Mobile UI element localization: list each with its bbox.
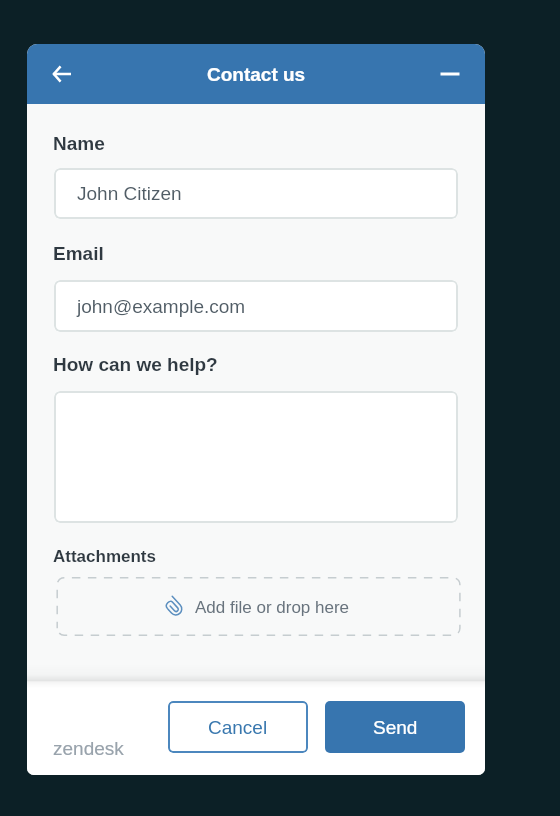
staticText: Send	[373, 717, 418, 738]
staticText: zendesk	[53, 738, 124, 759]
button[interactable]: Add file or drop here	[54, 577, 458, 636]
button[interactable]: Send	[325, 701, 465, 753]
button[interactable]	[54, 391, 458, 523]
staticText: Attachments	[53, 547, 156, 566]
staticText: john@example.com	[77, 296, 246, 317]
staticText: Email	[53, 243, 104, 264]
staticText: Cancel	[208, 717, 268, 738]
staticText: How can we help?	[53, 354, 218, 375]
button[interactable]: john@example.com	[54, 280, 458, 332]
button[interactable]: Cancel	[168, 701, 308, 753]
button[interactable]: Back	[40, 52, 84, 96]
button[interactable]: Minimize	[428, 52, 472, 96]
staticText: Contact us	[207, 64, 306, 85]
staticText: John Citizen	[77, 183, 182, 204]
staticText: Add file or drop here	[195, 598, 350, 617]
button[interactable]: John Citizen	[54, 168, 458, 219]
staticText: Name	[53, 133, 105, 154]
